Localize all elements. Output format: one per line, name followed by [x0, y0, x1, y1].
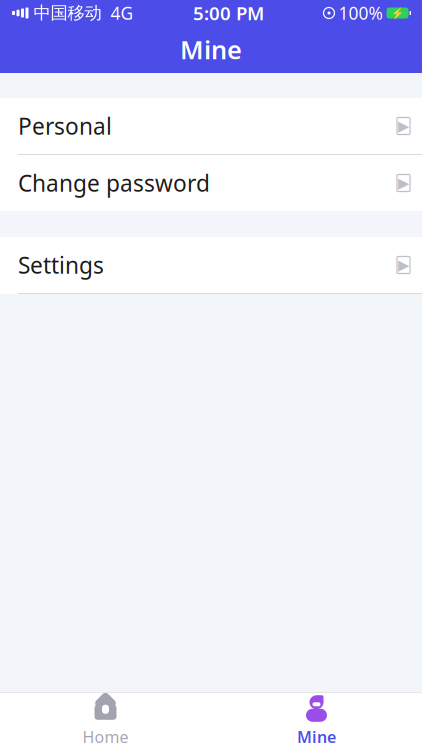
- staticText: 中国移动: [33, 2, 101, 24]
- staticText: 100%: [338, 1, 382, 24]
- staticText: Personal: [18, 111, 112, 141]
- button[interactable]: Personal: [0, 98, 422, 154]
- staticText: ▶: [398, 118, 409, 134]
- staticText: Mine: [297, 726, 336, 747]
- button[interactable]: Home: [0, 693, 211, 750]
- staticText: 4G: [110, 1, 133, 24]
- button[interactable]: Change password: [0, 155, 422, 211]
- button[interactable]: Settings: [0, 237, 422, 293]
- staticText: Home: [82, 726, 128, 747]
- staticText: ▶: [398, 257, 409, 273]
- staticText: Change password: [18, 168, 210, 198]
- staticText: ▶: [398, 175, 409, 191]
- staticText: Settings: [18, 250, 104, 280]
- staticText: Mine: [180, 33, 242, 66]
- staticText: 5:00 PM: [193, 1, 264, 25]
- button[interactable]: Mine: [211, 693, 422, 750]
- staticText: ⚡: [391, 7, 404, 19]
